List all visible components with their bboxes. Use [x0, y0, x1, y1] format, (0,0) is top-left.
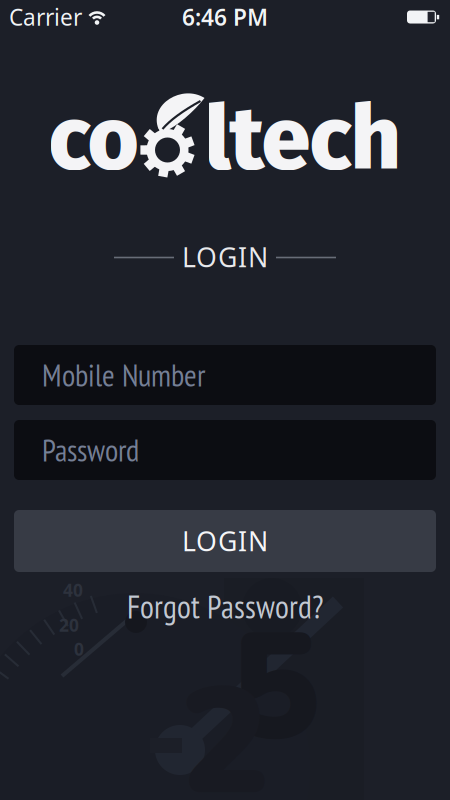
button[interactable]: Password — [14, 420, 436, 480]
staticText: 40 — [63, 578, 83, 601]
staticText: 0 — [74, 637, 84, 660]
staticText: Mobile Number — [42, 355, 205, 395]
staticText: 2 — [180, 640, 270, 800]
staticText: LOGIN — [182, 239, 268, 275]
staticText: ltech — [204, 86, 401, 192]
staticText: 5 — [231, 586, 321, 790]
staticText: co — [48, 86, 138, 192]
staticText: Password — [42, 430, 139, 470]
staticText: Forgot Password? — [127, 586, 323, 627]
button[interactable]: Mobile Number — [14, 345, 436, 405]
button[interactable]: LOGIN — [14, 510, 436, 572]
staticText: 20 — [59, 613, 79, 636]
staticText: 6:46 PM — [182, 2, 268, 32]
staticText: Carrier — [9, 2, 82, 32]
button[interactable]: Forgot Password? — [127, 586, 323, 627]
staticText: LOGIN — [182, 523, 268, 559]
